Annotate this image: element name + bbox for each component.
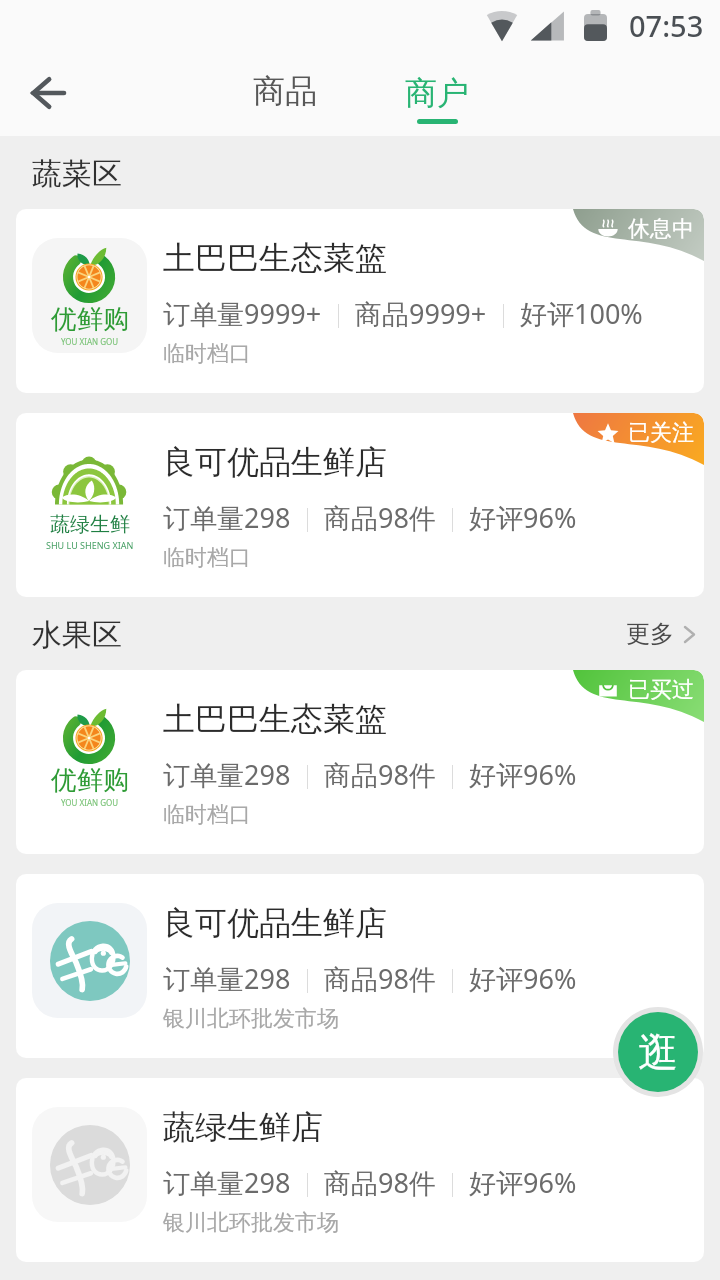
button[interactable]: 已关注 [16,413,704,597]
staticText: 临时档口 [163,340,251,368]
button[interactable]: 蔬绿生鲜店 [16,1078,704,1262]
staticText: 水果区 [32,616,122,654]
button[interactable]: 商品 [221,50,349,136]
staticText: 休息中 [628,215,694,243]
button[interactable]: Back [11,57,83,129]
staticText: 已关注 [628,419,694,447]
staticText: SHU LU SHENG XIAN [46,539,134,551]
staticText: 临时档口 [163,801,251,829]
staticText: 蔬绿生鲜 [50,512,130,537]
staticText: 商品 [253,71,317,111]
staticText: 土巴巴生态菜篮 [163,238,387,278]
staticText: 优鲜购 [51,303,129,336]
staticText: 蔬绿生鲜店 [163,1107,323,1147]
staticText: 订单量298 [163,960,291,997]
staticText: 逛 [638,1027,678,1077]
staticText: 商品98件 [324,1164,436,1201]
staticText: 订单量9999+ [163,295,322,332]
staticText: 银川北环批发市场 [163,1005,339,1033]
button[interactable]: 逛 [618,1012,698,1092]
staticText: YOU XIAN GOU [61,336,119,347]
button[interactable]: 休息中 [16,209,704,393]
staticText: 好评96% [469,499,577,536]
staticText: 银川北环批发市场 [163,1209,339,1237]
button[interactable]: 商户 [373,50,501,136]
staticText: 良可优品生鲜店 [163,442,387,482]
staticText: 优鲜购 [51,764,129,797]
staticText: YOU XIAN GOU [61,797,119,808]
staticText: 更多 [626,619,674,649]
staticText: 已买过 [628,676,694,704]
staticText: 订单量298 [163,499,291,536]
staticText: 好评96% [469,1164,577,1201]
staticText: 07:53 [629,6,704,45]
staticText: 好评96% [469,960,577,997]
staticText: 蔬菜区 [32,155,122,193]
staticText: 订单量298 [163,756,291,793]
button[interactable]: 已买过 [16,670,704,854]
button[interactable]: 更多 [626,619,695,649]
staticText: 商品9999+ [355,295,487,332]
staticText: 好评100% [520,295,643,332]
staticText: 商品98件 [324,499,436,536]
button[interactable]: 良可优品生鲜店 [16,874,704,1058]
staticText: 好评96% [469,756,577,793]
staticText: 商品98件 [324,960,436,997]
staticText: 商品98件 [324,756,436,793]
staticText: 订单量298 [163,1164,291,1201]
staticText: 商户 [405,73,469,113]
staticText: 良可优品生鲜店 [163,903,387,943]
staticText: 临时档口 [163,544,251,572]
staticText: 土巴巴生态菜篮 [163,699,387,739]
